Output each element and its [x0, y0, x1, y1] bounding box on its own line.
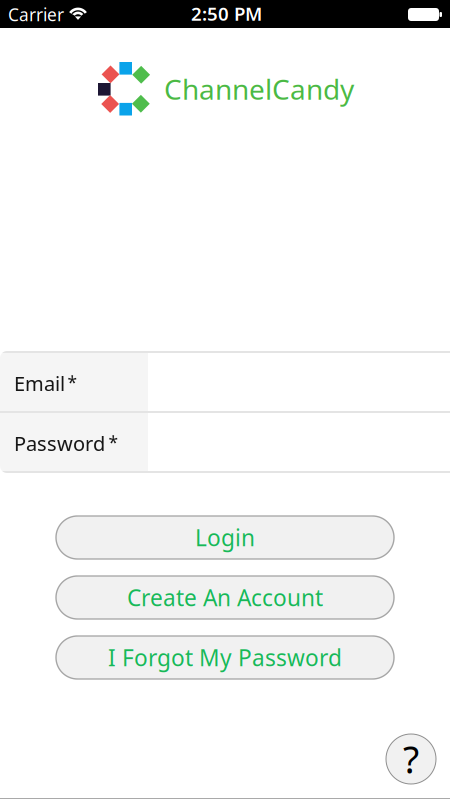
- button[interactable]: Create An Account: [56, 576, 394, 619]
- staticText: ChannelCandy: [164, 70, 354, 108]
- staticText: Carrier: [8, 3, 64, 26]
- button[interactable]: I Forgot My Password: [56, 636, 394, 679]
- button[interactable]: Password: [0, 413, 450, 471]
- staticText: 2:50 PM: [191, 1, 262, 26]
- button[interactable]: Email: [0, 353, 450, 411]
- staticText: Login: [195, 522, 255, 552]
- staticText: *: [108, 431, 118, 454]
- staticText: ?: [403, 734, 419, 784]
- staticText: Create An Account: [127, 582, 323, 612]
- staticText: *: [67, 371, 77, 394]
- button[interactable]: Login: [56, 516, 394, 559]
- button[interactable]: Help: [386, 734, 436, 784]
- staticText: Email: [14, 370, 65, 397]
- staticText: Password: [14, 430, 105, 457]
- staticText: I Forgot My Password: [108, 642, 342, 672]
